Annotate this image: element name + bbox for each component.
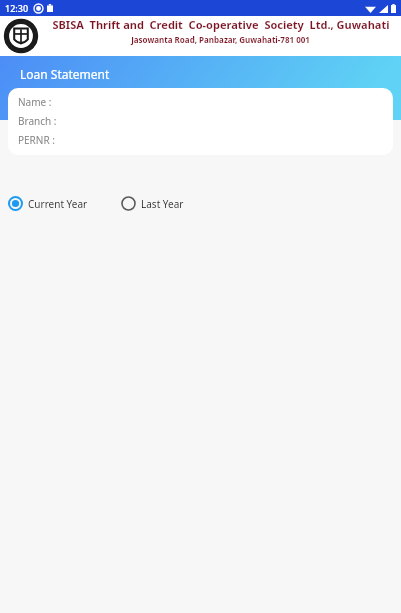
other: Society logo xyxy=(4,19,38,53)
button[interactable]: Name : xyxy=(8,88,393,155)
staticText: Branch : xyxy=(18,114,57,128)
staticText: 12:30 xyxy=(5,2,29,14)
staticText: Last Year xyxy=(141,197,184,211)
staticText: Name : xyxy=(18,95,52,109)
staticText: Jasowanta Road, Panbazar, Guwahati-781 0… xyxy=(131,34,310,45)
staticText: PERNR : xyxy=(18,133,55,147)
staticText: SBISA Thrift and Credit Co-operative Soc… xyxy=(52,17,390,32)
button[interactable]: Last Year xyxy=(113,192,192,215)
staticText: Current Year xyxy=(28,197,88,211)
button[interactable]: Current Year xyxy=(0,192,96,215)
staticText: Loan Statement xyxy=(20,66,110,82)
